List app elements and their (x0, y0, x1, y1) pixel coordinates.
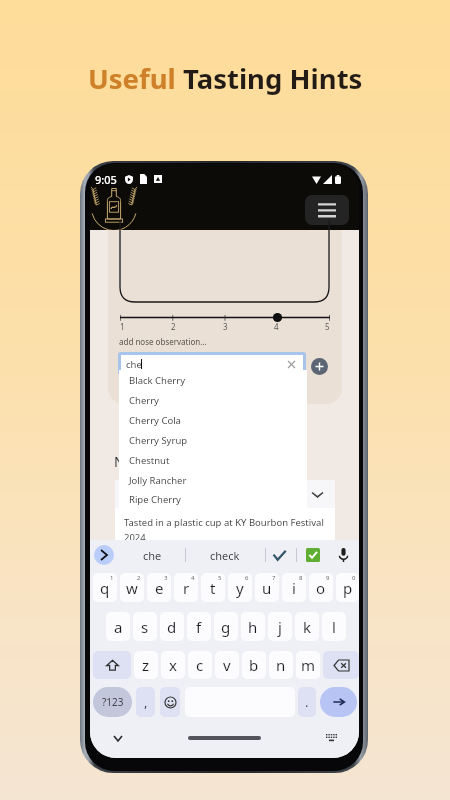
staticText: 8 (299, 574, 303, 582)
staticText: Tasting Hints (183, 60, 363, 97)
staticText: u (262, 578, 272, 598)
button[interactable]: Black Cherry (119, 370, 307, 390)
staticText: 4 (274, 321, 279, 332)
staticText: c (196, 655, 204, 675)
staticText: x (169, 655, 177, 675)
button[interactable]: Shift (93, 651, 131, 679)
button[interactable]: l (322, 612, 346, 641)
button[interactable]: r (174, 573, 198, 602)
staticText: Useful (88, 60, 183, 97)
button[interactable]: che (127, 541, 177, 569)
button[interactable]: Accept (272, 548, 286, 562)
button[interactable]: k (295, 612, 319, 641)
button[interactable]: j (268, 612, 292, 641)
staticText: 1 (110, 574, 114, 582)
button[interactable]: a (106, 612, 130, 641)
staticText: a (114, 617, 123, 637)
staticText: 2024 (124, 531, 146, 541)
button[interactable]: p (336, 573, 359, 602)
staticText: . (305, 693, 309, 711)
staticText: Ripe Cherry (129, 493, 181, 506)
staticText: Chestnut (129, 454, 170, 467)
staticText: 4 (191, 574, 195, 582)
staticText: o (316, 578, 326, 598)
button[interactable]: che (118, 352, 306, 375)
staticText: i (292, 578, 296, 598)
button[interactable]: Cherry (119, 390, 307, 410)
staticText: Cherry Cola (129, 414, 181, 427)
staticText: h (248, 617, 258, 637)
button[interactable]: w (120, 573, 144, 602)
staticText: q (100, 578, 110, 598)
staticText: g (221, 617, 231, 637)
button[interactable]: Switch keyboard (323, 730, 339, 746)
staticText: 5 (218, 574, 222, 582)
button[interactable]: check (200, 541, 250, 569)
button[interactable]: e (147, 573, 171, 602)
staticText: y (236, 578, 244, 598)
staticText: Black Cherry (129, 374, 185, 387)
button[interactable]: h (241, 612, 265, 641)
button[interactable]: Emoji (160, 687, 180, 717)
staticText: 2 (137, 574, 141, 582)
button[interactable]: . (298, 687, 316, 717)
button[interactable]: Cherry Syrup (119, 430, 307, 450)
staticText: z (142, 655, 150, 675)
staticText: w (126, 578, 138, 598)
button[interactable]: Add observation (311, 358, 328, 375)
button[interactable]: Menu (305, 195, 349, 225)
staticText: e (155, 578, 164, 598)
staticText: 1 (120, 321, 125, 332)
button[interactable]: Voice input (335, 547, 351, 563)
button[interactable]: ?123 (93, 687, 132, 717)
button[interactable]: Hide keyboard (110, 730, 126, 746)
staticText: n (276, 655, 286, 675)
staticText: m (301, 655, 316, 675)
staticText: f (196, 617, 202, 637)
staticText: Tasted in a plastic cup at KY Bourbon Fe… (124, 516, 324, 529)
staticText: k (303, 617, 312, 637)
button[interactable]: n (269, 651, 293, 679)
button[interactable]: Enter (320, 687, 357, 717)
staticText: b (249, 655, 259, 675)
button[interactable]: Chestnut (119, 450, 307, 470)
button[interactable]: Expand suggestions (94, 545, 114, 565)
button[interactable]: g (214, 612, 238, 641)
button[interactable]: Ripe Cherry (119, 490, 307, 508)
button[interactable]: v (215, 651, 239, 679)
staticText: s (141, 617, 149, 637)
button[interactable]: b (242, 651, 266, 679)
button[interactable]: y (228, 573, 252, 602)
button[interactable]: Select option (115, 480, 335, 508)
button[interactable]: f (187, 612, 211, 641)
staticText: ?123 (102, 695, 124, 709)
staticText: , (144, 693, 148, 711)
button[interactable]: z (134, 651, 158, 679)
button[interactable]: o (309, 573, 333, 602)
staticText: j (278, 617, 282, 637)
button[interactable]: x (161, 651, 185, 679)
button[interactable]: m (296, 651, 320, 679)
button[interactable]: u (255, 573, 279, 602)
button[interactable]: i (282, 573, 306, 602)
button[interactable]: s (133, 612, 157, 641)
staticText: Cherry (129, 394, 159, 407)
button[interactable]: Cherry Cola (119, 410, 307, 430)
staticText: 7 (272, 574, 276, 582)
staticText: check (210, 548, 240, 563)
staticText: N (114, 452, 125, 471)
staticText: che (143, 548, 162, 563)
button[interactable]: t (201, 573, 225, 602)
button[interactable]: d (160, 612, 184, 641)
button[interactable]: c (188, 651, 212, 679)
button[interactable]: Confirm (306, 548, 320, 562)
staticText: v (223, 655, 231, 675)
staticText: l (332, 617, 336, 637)
button[interactable]: Backspace (323, 651, 359, 679)
button[interactable]: Jolly Rancher (119, 470, 307, 490)
staticText: p (343, 578, 353, 598)
staticText: 6 (245, 574, 249, 582)
button[interactable]: q (93, 573, 117, 602)
button[interactable]: , (136, 687, 155, 717)
